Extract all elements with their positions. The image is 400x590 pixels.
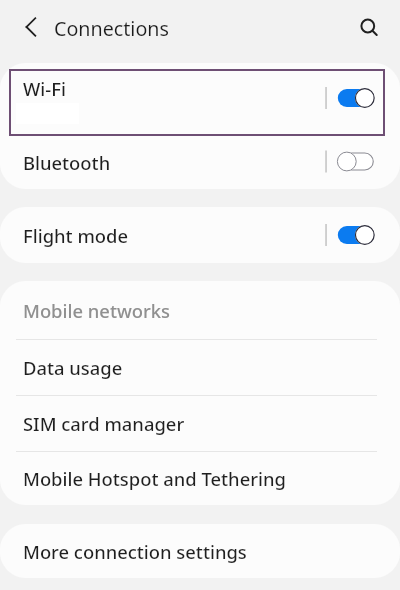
button[interactable]: Mobile Hotspot and Tethering <box>0 452 400 505</box>
button[interactable]: Toggle off <box>315 143 375 183</box>
staticText: Mobile Hotspot and Tethering <box>23 466 286 491</box>
button[interactable]: Search <box>350 10 386 46</box>
button[interactable]: Toggle on <box>315 215 375 255</box>
button[interactable]: Data usage <box>0 340 400 395</box>
button[interactable]: Mobile networks <box>0 281 400 339</box>
staticText: SIM card manager <box>23 411 185 436</box>
staticText: Data usage <box>23 355 123 380</box>
staticText: Wi-Fi <box>23 76 66 101</box>
button[interactable]: Flight mode <box>0 207 400 263</box>
button[interactable]: Bluetooth <box>0 136 400 189</box>
staticText: Bluetooth <box>23 150 111 175</box>
staticText: Flight mode <box>23 223 129 248</box>
button[interactable]: Back <box>13 9 49 45</box>
button[interactable]: More connection settings <box>0 524 400 578</box>
staticText: More connection settings <box>23 539 247 564</box>
staticText: Mobile networks <box>23 298 170 323</box>
staticText: Connections <box>54 15 169 42</box>
button[interactable]: Toggle on <box>315 80 375 120</box>
button[interactable]: Wi-Fi <box>0 63 400 136</box>
button[interactable]: SIM card manager <box>0 396 400 451</box>
